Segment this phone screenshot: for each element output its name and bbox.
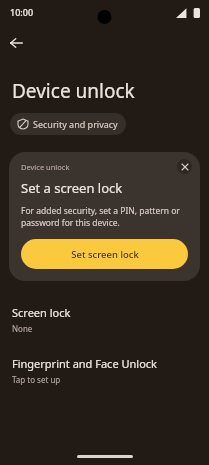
button[interactable]: Set screen lock	[21, 239, 188, 269]
staticText: Device unlock	[21, 162, 70, 172]
button[interactable]: Screen lock	[0, 303, 209, 336]
staticText: Set screen lock	[71, 248, 139, 261]
button[interactable]: Close	[177, 159, 192, 174]
button[interactable]: Security and privacy	[10, 113, 126, 135]
button[interactable]: Fingerprint and Face Unlock	[0, 354, 209, 387]
staticText: For added security, set a PIN, pattern o…	[21, 205, 188, 229]
staticText: Set a screen lock	[21, 179, 123, 197]
staticText: Device unlock	[12, 78, 135, 104]
button[interactable]: Back	[3, 30, 29, 56]
staticText: Screen lock	[12, 305, 71, 320]
staticText: None	[12, 323, 33, 334]
staticText: Fingerprint and Face Unlock	[12, 356, 157, 371]
staticText: 10:00	[10, 6, 34, 18]
staticText: Tap to set up	[12, 374, 61, 385]
staticText: Security and privacy	[33, 118, 118, 130]
